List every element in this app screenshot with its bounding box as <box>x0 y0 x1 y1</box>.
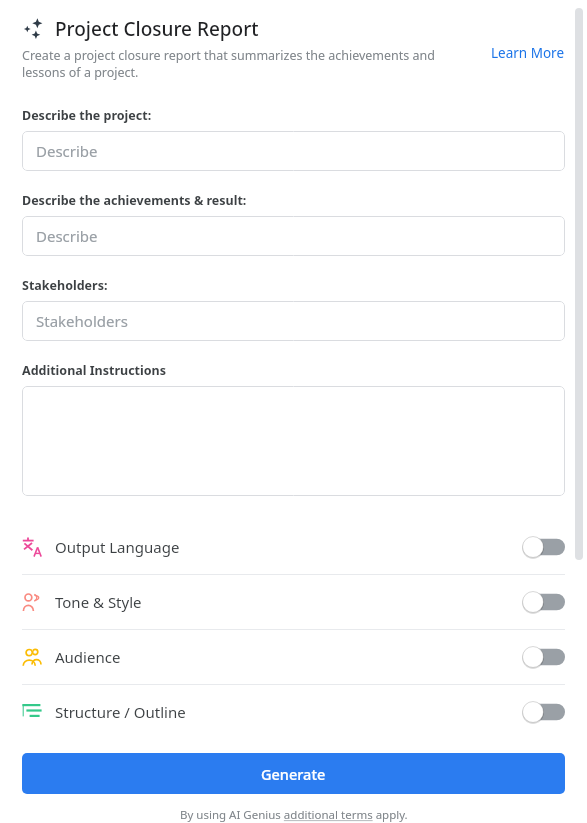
button[interactable]: Toggle option <box>522 536 565 558</box>
staticText: By using AI Genius additional terms appl… <box>180 807 408 823</box>
button[interactable]: Learn More <box>489 42 567 64</box>
staticText: Project Closure Report <box>55 16 259 42</box>
staticText: Describe the achievements & result: <box>22 192 247 209</box>
staticText: Structure / Outline <box>55 702 186 722</box>
button[interactable] <box>22 386 565 496</box>
staticText: Learn More <box>491 44 565 62</box>
staticText: Additional Instructions <box>22 362 166 379</box>
staticText: Audience <box>55 647 121 667</box>
staticText: Describe <box>36 141 98 161</box>
other: Audience <box>22 647 42 667</box>
button[interactable]: Describe <box>22 131 565 171</box>
staticText: Output Language <box>55 537 180 557</box>
button[interactable]: Describe <box>22 216 565 256</box>
staticText: Create a project closure report that sum… <box>22 47 452 81</box>
other: Output language <box>22 537 42 557</box>
staticText: Stakeholders <box>36 311 128 331</box>
button[interactable]: Tone and style <box>0 575 587 629</box>
button[interactable]: Structure outline <box>0 685 587 739</box>
button[interactable]: Audience <box>0 630 587 684</box>
other: Structure outline <box>22 702 42 722</box>
staticText: Describe the project: <box>22 107 152 124</box>
staticText: Generate <box>261 764 326 784</box>
other: AI sparkle <box>22 16 46 42</box>
staticText: Tone & Style <box>55 592 142 612</box>
staticText: Describe <box>36 226 98 246</box>
button[interactable]: Stakeholders <box>22 301 565 341</box>
button[interactable]: Toggle option <box>522 591 565 613</box>
staticText: Stakeholders: <box>22 277 108 294</box>
other: Tone and style <box>22 592 42 612</box>
button[interactable]: Toggle option <box>522 701 565 723</box>
button[interactable]: Generate <box>22 753 565 794</box>
button[interactable]: Output language <box>0 520 587 574</box>
button[interactable]: Toggle option <box>522 646 565 668</box>
